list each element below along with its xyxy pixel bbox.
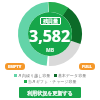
staticText: 基本データ容量 xyxy=(58,73,87,78)
staticText: 3,582 xyxy=(29,25,71,47)
staticText: 利用状況を更新する xyxy=(27,90,73,96)
other: FULL xyxy=(82,64,92,69)
staticText: FULL xyxy=(82,64,92,69)
staticText: EMPTY xyxy=(8,64,22,69)
other: EMPTY xyxy=(8,64,22,69)
button[interactable]: 利用状況を更新する xyxy=(19,87,81,98)
staticText: 当月ギフト・チャージ容量 xyxy=(28,79,77,84)
staticText: 月内繰り越し容量 xyxy=(18,73,51,78)
staticText: MB xyxy=(46,47,55,54)
staticText: 残日量 xyxy=(43,18,58,24)
